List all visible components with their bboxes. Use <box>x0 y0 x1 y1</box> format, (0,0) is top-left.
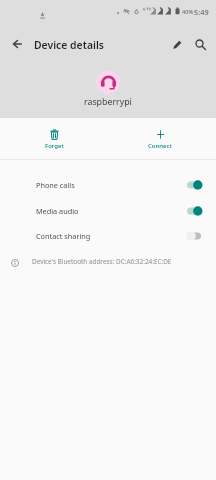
staticText: raspberrypi <box>84 96 132 108</box>
staticText: Device details <box>34 38 104 52</box>
button[interactable]: Connect <box>107 120 213 159</box>
staticText: Contact sharing <box>36 231 91 241</box>
staticText: 40% <box>182 8 194 16</box>
button[interactable]: Forget <box>1 120 107 159</box>
button[interactable]: Navigate up <box>4 31 30 57</box>
staticText: Phone calls <box>36 180 75 190</box>
staticText: 5:49 <box>194 7 209 17</box>
button[interactable]: Contact sharing <box>0 223 216 248</box>
button[interactable]: Phone calls <box>0 172 216 197</box>
button[interactable]: Rename device <box>164 31 190 57</box>
staticText: Forget <box>45 142 64 150</box>
staticText: Media audio <box>36 206 79 216</box>
staticText: Device's Bluetooth address: DC:A6:32:24:… <box>32 257 172 266</box>
button[interactable]: Media audio <box>0 198 216 223</box>
staticText: Connect <box>148 142 172 150</box>
button[interactable]: Search <box>187 31 213 57</box>
